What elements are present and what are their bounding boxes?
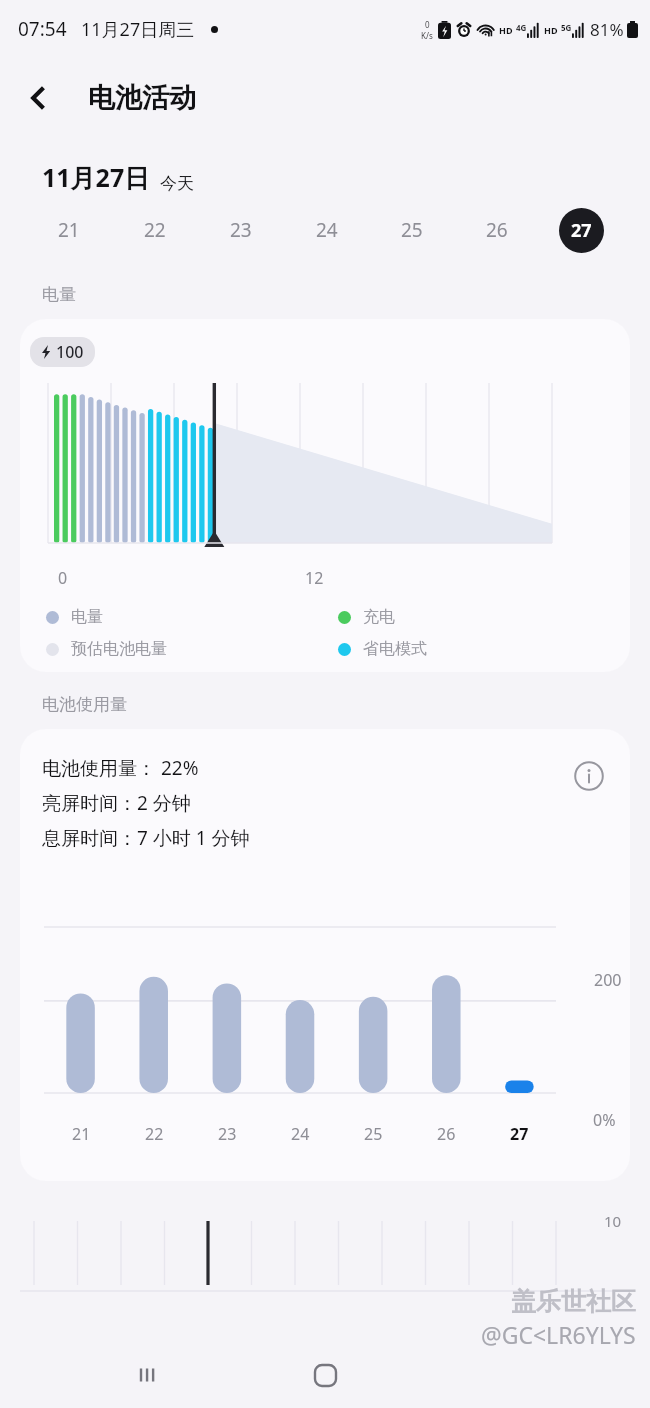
staticText: 5G [561, 22, 572, 33]
staticText: 100 [56, 341, 84, 363]
staticText: 24 [291, 1123, 310, 1145]
staticText: 今天 [160, 173, 194, 194]
staticText: 23 [230, 217, 252, 243]
staticText: 23 [218, 1123, 237, 1145]
staticText: 07:54 [18, 16, 67, 42]
button[interactable]: 信息 [568, 755, 610, 797]
staticText: HD [499, 24, 513, 36]
staticText: 电池使用量： 22% [42, 755, 199, 781]
button[interactable]: 27 [539, 194, 624, 266]
staticText: 11月27日 [42, 160, 150, 194]
staticText: 亮屏时间：2 分钟 [42, 790, 191, 816]
staticText: 电池使用量 [42, 694, 127, 715]
button[interactable]: 23 [198, 194, 284, 266]
button[interactable]: 22 [112, 194, 198, 266]
staticText: HD [544, 24, 558, 36]
staticText: 27 [510, 1123, 529, 1145]
staticText: 200 [594, 969, 622, 991]
staticText: 26 [437, 1123, 456, 1145]
staticText: 26 [486, 217, 508, 243]
button[interactable]: 最近任务 [122, 1348, 176, 1402]
button[interactable]: 21 [26, 194, 112, 266]
staticText: 0% [593, 1109, 616, 1131]
staticText: 27 [571, 218, 592, 243]
staticText: 盖乐世社区 [511, 1286, 636, 1317]
staticText: 22 [145, 1123, 164, 1145]
staticText: 省电模式 [363, 639, 427, 659]
staticText: 12 [305, 567, 324, 589]
staticText: 22 [144, 217, 166, 243]
staticText: K/s [421, 30, 433, 41]
staticText: 10 [604, 1211, 622, 1231]
button[interactable]: 26 [454, 194, 539, 266]
staticText: 息屏时间：7 小时 1 分钟 [42, 825, 250, 851]
staticText: 0 [58, 567, 68, 589]
staticText: 充电 [363, 607, 395, 627]
staticText: 0 [425, 19, 430, 30]
staticText: 21 [72, 1123, 91, 1145]
staticText: 电池活动 [88, 81, 196, 115]
button[interactable]: 主屏幕 [298, 1348, 352, 1402]
staticText: 电量 [42, 284, 76, 305]
staticText: 21 [58, 217, 80, 243]
staticText: @GC<LR6YLYS [481, 1319, 636, 1350]
staticText: 81% [590, 18, 624, 41]
staticText: 25 [364, 1123, 383, 1145]
button[interactable]: 返回 [10, 70, 66, 126]
staticText: 24 [316, 217, 338, 243]
button[interactable]: 24 [284, 194, 369, 266]
staticText: 电量 [71, 607, 103, 627]
staticText: 25 [401, 217, 423, 243]
staticText: 4G [516, 22, 527, 33]
button[interactable]: 25 [369, 194, 454, 266]
button[interactable]: 100 [20, 319, 630, 672]
staticText: 预估电池电量 [71, 639, 167, 659]
staticText: 11月27日周三 [81, 17, 195, 42]
button[interactable]: 电池使用量： 22% [20, 729, 630, 1181]
